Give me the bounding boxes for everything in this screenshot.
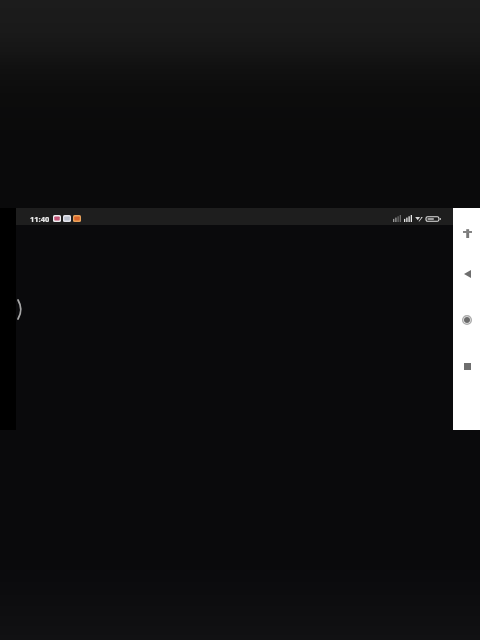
button[interactable]: Hide keyboard — [458, 224, 476, 242]
staticText: 11:40 — [30, 214, 50, 224]
button[interactable]: Back — [458, 265, 476, 283]
button[interactable]: Home — [458, 311, 476, 329]
button[interactable]: Recent apps — [458, 357, 476, 375]
